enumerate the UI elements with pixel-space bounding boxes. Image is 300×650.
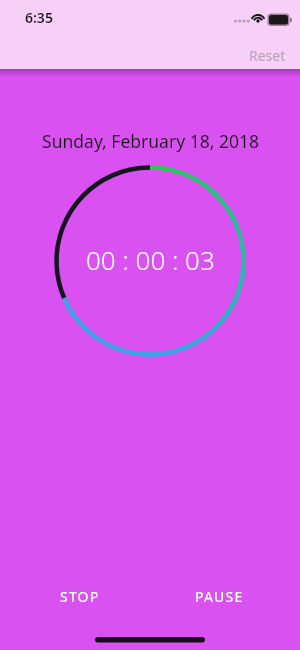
staticText: 6:35: [25, 8, 53, 27]
button[interactable]: PAUSE: [189, 584, 249, 608]
staticText: PAUSE: [195, 587, 244, 606]
staticText: Reset: [249, 46, 286, 65]
staticText: STOP: [60, 587, 100, 606]
button[interactable]: STOP: [50, 584, 110, 608]
staticText: 00 : 00 : 03: [86, 242, 215, 277]
staticText: Sunday, February 18, 2018: [42, 129, 259, 153]
button[interactable]: Reset: [249, 46, 286, 65]
